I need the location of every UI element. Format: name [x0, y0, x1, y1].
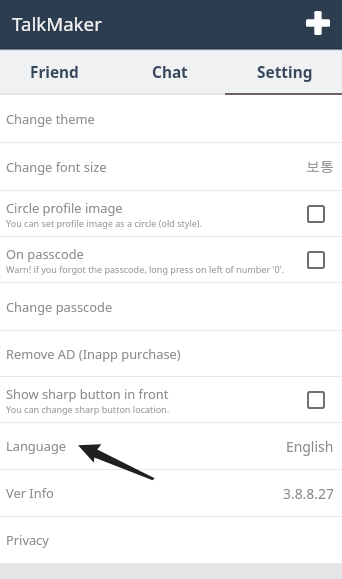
- button[interactable]: On passcode: [0, 237, 342, 282]
- button[interactable]: Remove AD (Inapp purchase): [0, 331, 342, 376]
- staticText: Change font size: [6, 158, 107, 176]
- button[interactable]: Friend: [0, 48, 113, 95]
- staticText: You can set profile image as a circle (o…: [6, 217, 202, 229]
- button[interactable]: Add: [294, 0, 342, 48]
- button[interactable]: Circle profile image: [0, 191, 342, 236]
- staticText: Friend: [30, 62, 79, 83]
- button[interactable]: Show sharp button in front: [0, 377, 342, 422]
- staticText: Circle profile image: [6, 199, 123, 217]
- button[interactable]: Ver Info: [0, 470, 342, 516]
- staticText: 3.8.8.27: [283, 484, 334, 503]
- staticText: Change passcode: [6, 298, 113, 316]
- staticText: Chat: [152, 62, 188, 83]
- staticText: On passcode: [6, 245, 84, 263]
- staticText: Setting: [257, 62, 313, 83]
- staticText: You can change sharp button location.: [6, 403, 170, 415]
- staticText: Remove AD (Inapp purchase): [6, 345, 181, 363]
- staticText: Change theme: [6, 110, 95, 128]
- staticText: Warn! if you forgot the passcode, long p…: [6, 263, 285, 275]
- staticText: Privacy: [6, 531, 49, 549]
- button[interactable]: Change theme: [0, 95, 342, 142]
- staticText: TalkMaker: [12, 11, 102, 36]
- button[interactable]: Change passcode: [0, 283, 342, 330]
- staticText: 보통: [306, 158, 334, 176]
- button[interactable]: Language: [0, 423, 342, 469]
- button[interactable]: Setting: [230, 48, 340, 95]
- staticText: English: [286, 437, 334, 456]
- staticText: Language: [6, 437, 67, 455]
- button[interactable]: Privacy: [0, 517, 342, 563]
- button[interactable]: Chat: [113, 48, 227, 95]
- button[interactable]: Change font size: [0, 143, 342, 190]
- staticText: Show sharp button in front: [6, 385, 169, 403]
- staticText: Ver Info: [6, 484, 54, 502]
